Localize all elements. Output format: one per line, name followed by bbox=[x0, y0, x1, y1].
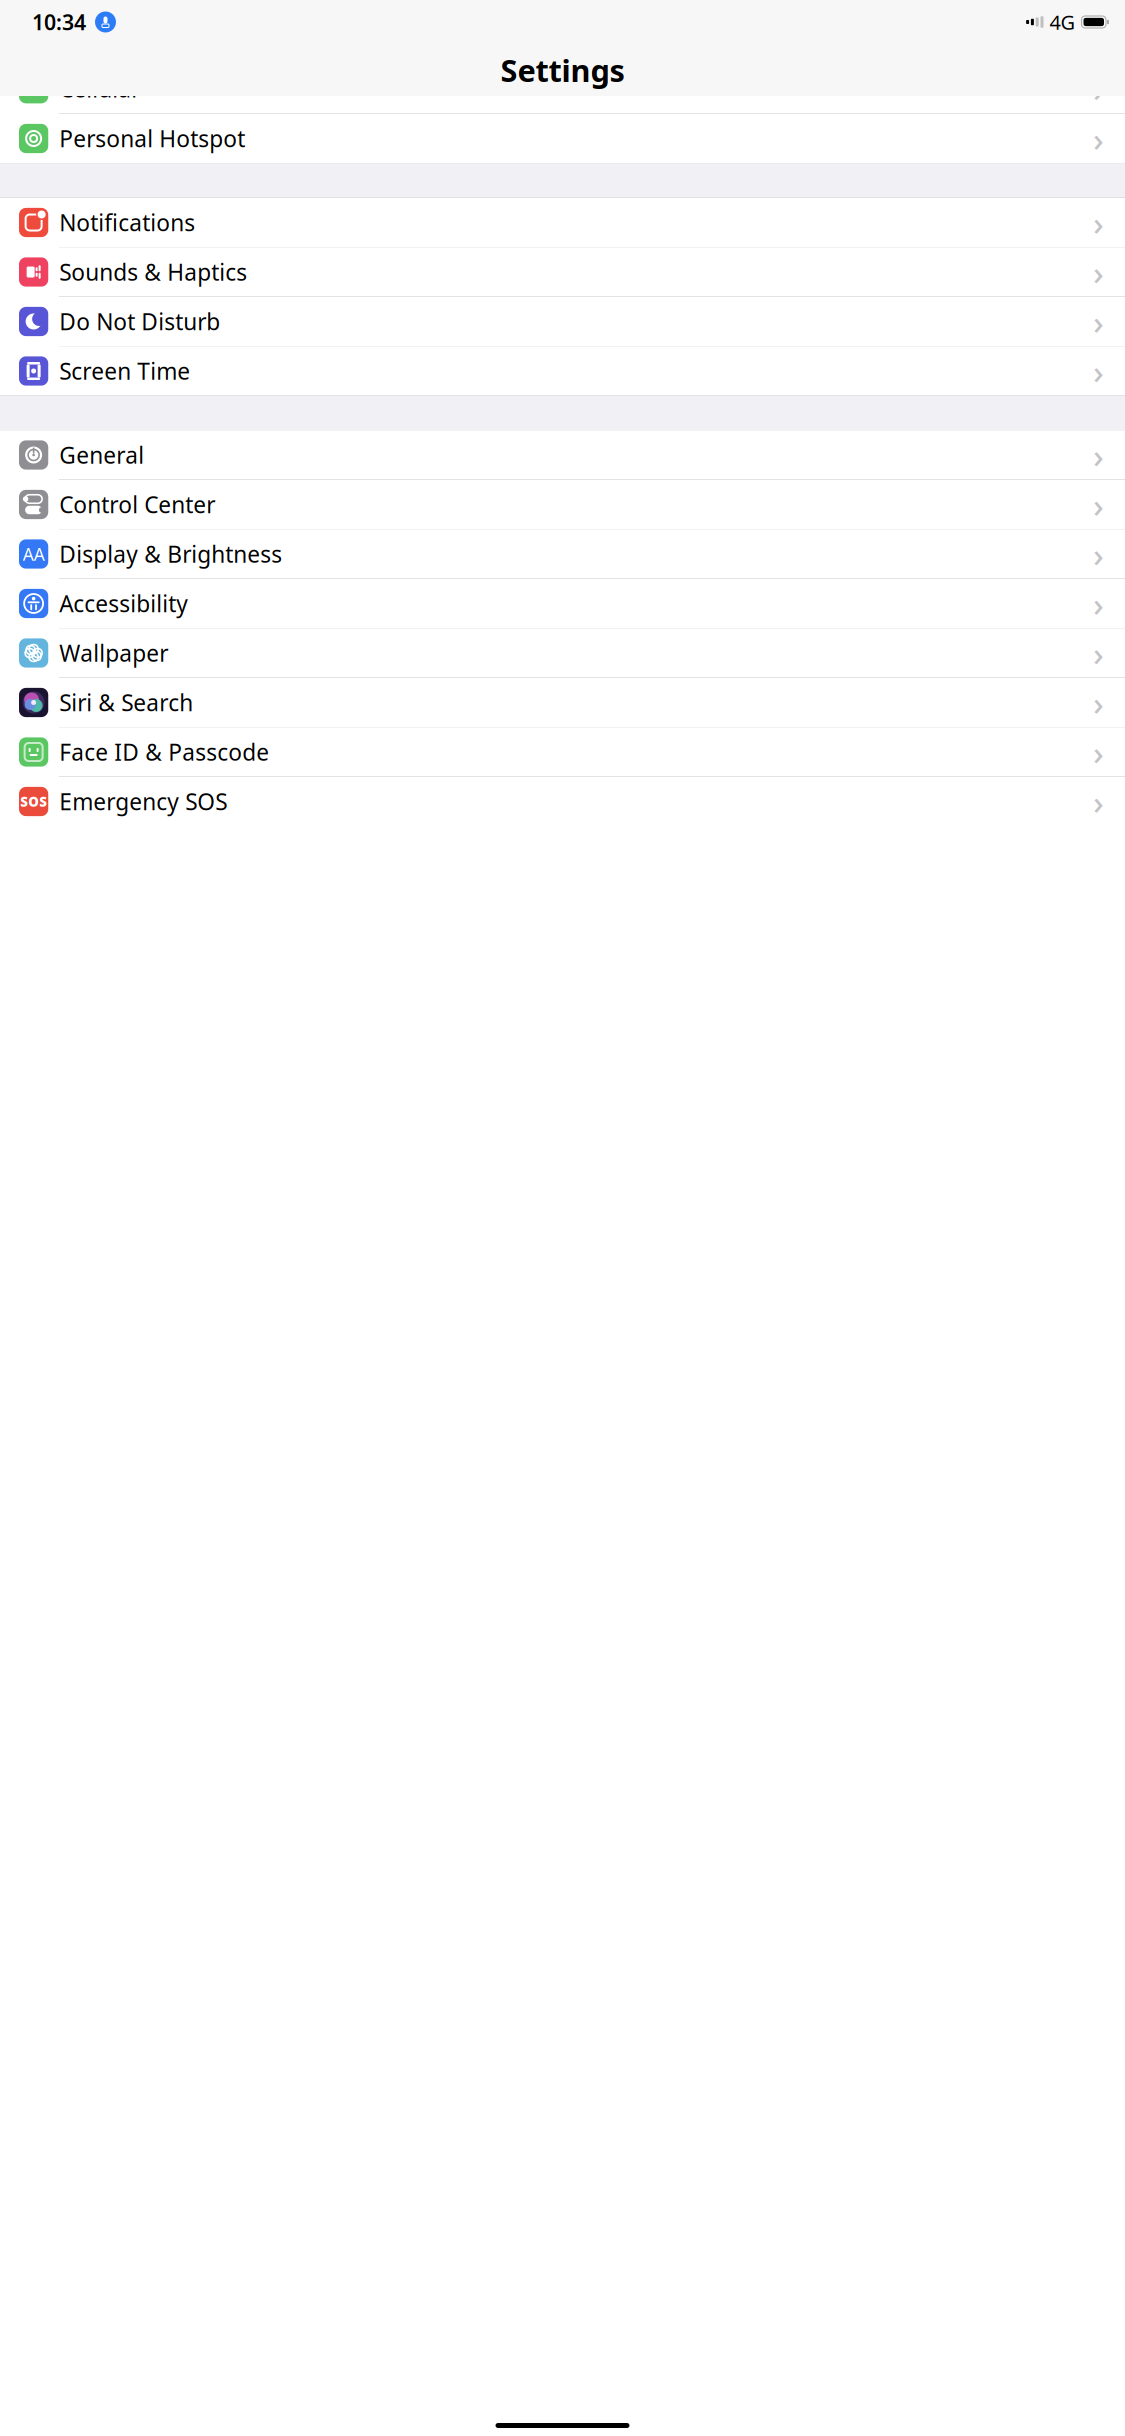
staticText: › bbox=[1093, 532, 1104, 576]
staticText: Notifications bbox=[59, 207, 195, 237]
staticText: Cellular bbox=[59, 74, 140, 104]
staticText: › bbox=[1093, 631, 1104, 675]
button[interactable]: Do Not Disturb bbox=[0, 297, 1125, 346]
button[interactable]: Screen Time bbox=[0, 346, 1125, 395]
button[interactable]: Notifications bbox=[0, 198, 1125, 247]
staticText: Control Center bbox=[59, 489, 215, 519]
staticText: › bbox=[1093, 349, 1104, 393]
staticText: › bbox=[1093, 779, 1104, 824]
staticText: Personal Hotspot bbox=[59, 123, 245, 153]
button[interactable]: Face ID & Passcode bbox=[0, 727, 1125, 777]
staticText: › bbox=[1093, 680, 1104, 725]
button[interactable]: Personal Hotspot bbox=[0, 114, 1125, 163]
staticText: › bbox=[1093, 200, 1104, 245]
button[interactable]: Wallpaper bbox=[0, 628, 1125, 678]
staticText: › bbox=[1093, 250, 1104, 294]
staticText: Settings bbox=[500, 50, 624, 90]
staticText: Siri & Search bbox=[59, 687, 193, 717]
staticText: › bbox=[1093, 116, 1104, 161]
staticText: Do Not Disturb bbox=[59, 306, 220, 336]
staticText: Display & Brightness bbox=[59, 539, 282, 569]
staticText: Screen Time bbox=[59, 356, 190, 386]
staticText: General bbox=[59, 440, 144, 470]
staticText: › bbox=[1093, 482, 1104, 527]
staticText: › bbox=[1093, 730, 1104, 774]
staticText: 10:34 bbox=[32, 8, 86, 36]
staticText: Face ID & Passcode bbox=[59, 737, 269, 767]
staticText: Sounds & Haptics bbox=[59, 257, 247, 287]
button[interactable]: Accessibility bbox=[0, 579, 1125, 628]
staticText: › bbox=[1093, 67, 1104, 111]
staticText: Emergency SOS bbox=[59, 786, 227, 816]
button[interactable]: SOS bbox=[0, 777, 1125, 826]
button[interactable]: Control Center bbox=[0, 480, 1125, 529]
staticText: SOS bbox=[20, 793, 47, 810]
button[interactable]: Siri & Search bbox=[0, 678, 1125, 727]
button[interactable]: Sounds & Haptics bbox=[0, 247, 1125, 297]
staticText: › bbox=[1093, 299, 1104, 344]
staticText: Accessibility bbox=[59, 588, 188, 618]
staticText: › bbox=[1093, 433, 1104, 477]
staticText: Wallpaper bbox=[59, 638, 168, 668]
button[interactable]: General bbox=[0, 430, 1125, 480]
button[interactable]: AA bbox=[0, 529, 1125, 579]
staticText: › bbox=[1093, 581, 1104, 626]
staticText: 4G bbox=[1049, 9, 1075, 35]
staticText: AA bbox=[23, 542, 45, 565]
